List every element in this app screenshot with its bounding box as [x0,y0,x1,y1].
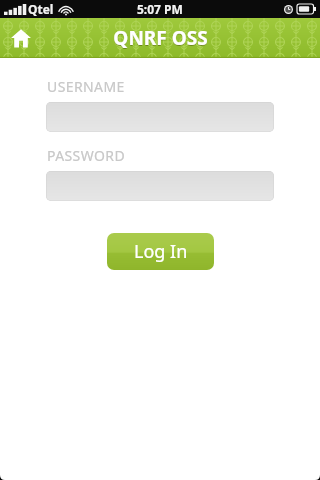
staticText: 5:07 PM [137,1,183,17]
staticText: USERNAME [47,77,125,96]
staticText: Qtel [28,1,54,17]
button[interactable] [46,102,274,132]
staticText: PASSWORD [47,146,126,165]
staticText: Log In [134,239,188,264]
staticText: QNRF OSS [113,25,208,51]
button[interactable]: Log In [107,233,214,270]
button[interactable] [46,171,274,201]
button[interactable]: Home [4,21,38,55]
staticText: QNRF OSS [113,26,208,52]
